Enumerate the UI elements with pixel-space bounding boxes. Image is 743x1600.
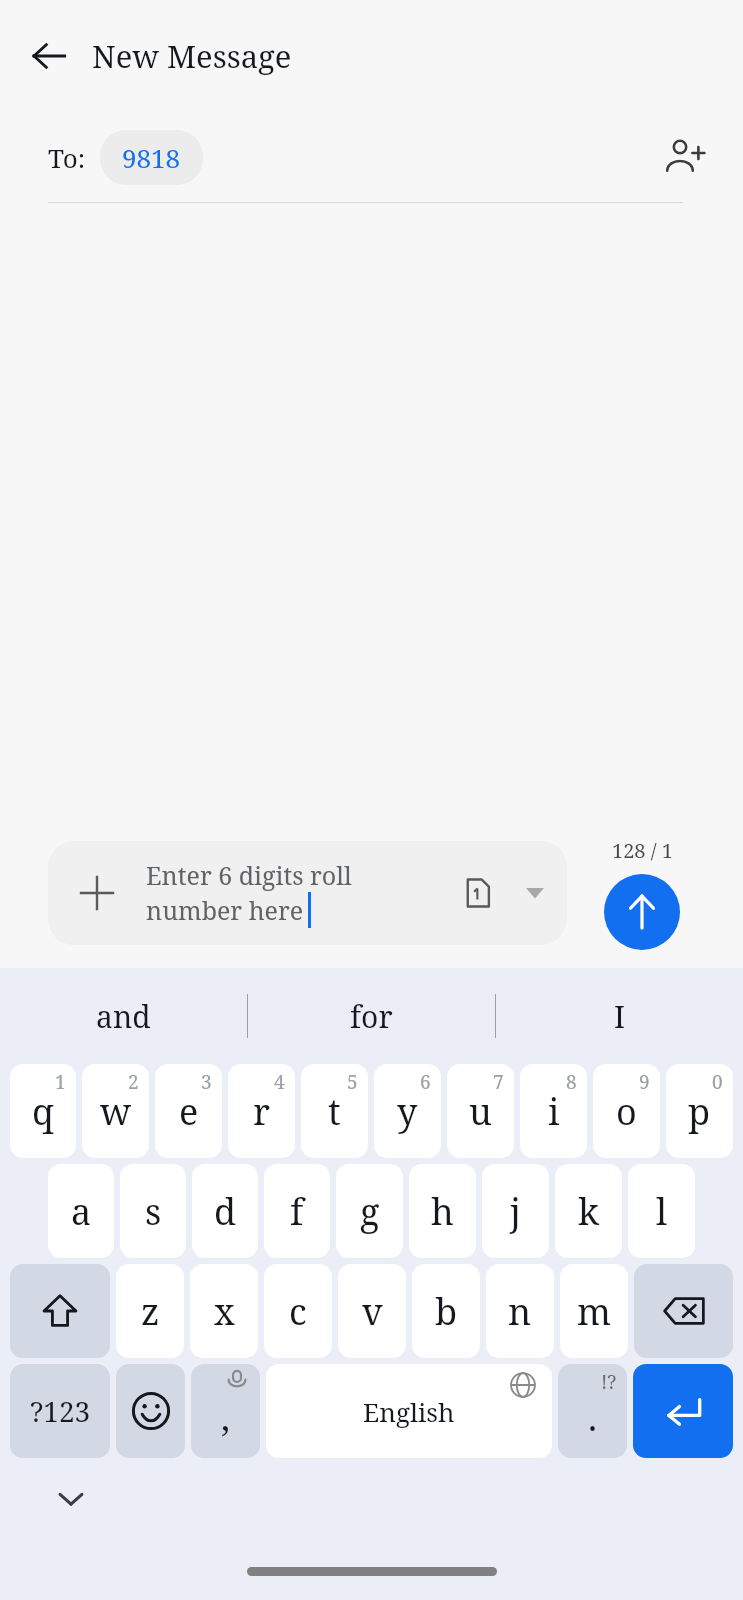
button[interactable]: I [496, 968, 743, 1064]
button[interactable]: Backspace [634, 1264, 733, 1358]
staticText: s [145, 1187, 162, 1236]
staticText: number here [146, 893, 304, 927]
staticText: h [431, 1187, 454, 1236]
staticText: q [32, 1087, 55, 1136]
button[interactable]: l [628, 1164, 695, 1258]
button[interactable]: 0 [666, 1064, 733, 1158]
button[interactable]: SIM 1 [447, 841, 509, 945]
button[interactable]: , [191, 1364, 260, 1458]
staticText: n [508, 1287, 532, 1336]
staticText: , [221, 1393, 230, 1442]
staticText: 4 [274, 1069, 285, 1095]
staticText: To: [48, 140, 86, 175]
button[interactable]: Shift [10, 1264, 110, 1358]
button[interactable]: f [264, 1164, 330, 1258]
button[interactable]: 9 [593, 1064, 660, 1158]
staticText: 8 [566, 1069, 577, 1095]
button[interactable]: b [412, 1264, 480, 1358]
button[interactable]: for [248, 968, 495, 1064]
button[interactable]: 1 [10, 1064, 76, 1158]
staticText: z [141, 1287, 160, 1336]
staticText: b [435, 1287, 458, 1336]
staticText: c [289, 1287, 307, 1336]
button[interactable]: h [409, 1164, 476, 1258]
button[interactable]: Space [266, 1364, 552, 1458]
staticText: y [397, 1087, 418, 1136]
staticText: m [577, 1287, 612, 1336]
button[interactable]: a [48, 1164, 114, 1258]
staticText: p [688, 1087, 711, 1136]
button[interactable]: Add contact [655, 128, 713, 186]
staticText: !? [601, 1369, 617, 1395]
button[interactable]: v [338, 1264, 406, 1358]
other: Attach [48, 841, 146, 945]
staticText: w [100, 1087, 132, 1136]
staticText: and [96, 996, 151, 1037]
staticText: 3 [201, 1069, 212, 1095]
staticText: o [616, 1087, 637, 1136]
button[interactable]: Send [604, 874, 680, 950]
button[interactable]: g [336, 1164, 403, 1258]
button[interactable]: Hide keyboard [44, 1472, 98, 1526]
button[interactable]: 3 [155, 1064, 222, 1158]
staticText: j [510, 1187, 521, 1236]
button[interactable]: 9818 [100, 130, 203, 185]
staticText: for [350, 996, 393, 1037]
button[interactable]: 5 [301, 1064, 368, 1158]
staticText: 6 [420, 1069, 431, 1095]
staticText: d [214, 1187, 237, 1236]
staticText: u [469, 1087, 492, 1136]
button[interactable]: Back [18, 25, 80, 87]
button[interactable]: m [560, 1264, 628, 1358]
staticText: 1 [55, 1069, 66, 1095]
button[interactable]: Emoji [116, 1364, 185, 1458]
staticText: 128 / 1 [612, 837, 673, 864]
staticText: t [328, 1087, 341, 1136]
staticText: x [214, 1287, 235, 1336]
staticText: I [614, 996, 626, 1037]
staticText: g [360, 1187, 380, 1236]
staticText: i [548, 1087, 560, 1136]
button[interactable]: Enter [633, 1364, 733, 1458]
button[interactable]: 2 [82, 1064, 149, 1158]
staticText: l [656, 1187, 668, 1236]
staticText: English [363, 1394, 455, 1429]
button[interactable]: z [116, 1264, 184, 1358]
button[interactable]: k [555, 1164, 622, 1258]
button[interactable]: s [120, 1164, 186, 1258]
button[interactable]: j [482, 1164, 549, 1258]
button[interactable]: 4 [228, 1064, 295, 1158]
staticText: 9818 [122, 140, 181, 175]
staticText: ?123 [30, 1392, 91, 1430]
button[interactable]: d [192, 1164, 258, 1258]
staticText: . [588, 1393, 597, 1442]
button[interactable]: x [190, 1264, 258, 1358]
button[interactable]: Attach [48, 841, 567, 945]
button[interactable]: ?123 [10, 1364, 110, 1458]
staticText: Enter 6 digits roll [146, 858, 352, 892]
button[interactable]: n [486, 1264, 554, 1358]
button[interactable]: 7 [447, 1064, 514, 1158]
staticText: v [362, 1287, 383, 1336]
staticText: k [578, 1187, 600, 1236]
staticText: 5 [347, 1069, 358, 1095]
staticText: 0 [712, 1069, 723, 1095]
button[interactable]: 8 [520, 1064, 587, 1158]
staticText: 7 [493, 1069, 504, 1095]
staticText: f [290, 1187, 304, 1236]
button[interactable]: c [264, 1264, 332, 1358]
button[interactable]: !? [558, 1364, 627, 1458]
staticText: r [253, 1087, 270, 1136]
staticText: e [179, 1087, 199, 1136]
button[interactable]: 6 [374, 1064, 441, 1158]
staticText: New Message [92, 35, 292, 77]
staticText: 2 [128, 1069, 139, 1095]
staticText: a [71, 1187, 92, 1236]
button[interactable]: and [0, 968, 247, 1064]
staticText: 9 [639, 1069, 650, 1095]
